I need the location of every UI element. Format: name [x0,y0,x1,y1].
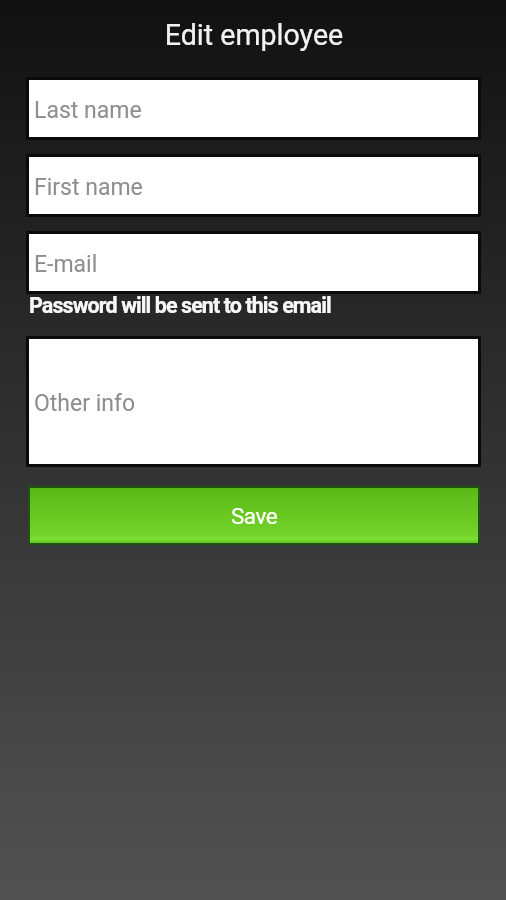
button[interactable]: Last name [29,80,478,137]
staticText: Password will be sent to this email [29,293,331,318]
button[interactable]: Save [30,488,478,543]
staticText: Save [231,503,278,529]
staticText: First name [34,174,143,201]
button[interactable]: Other info [29,339,478,464]
button[interactable]: E-mail [29,234,478,291]
staticText: E-mail [34,251,98,278]
button[interactable]: First name [29,157,478,214]
staticText: Edit employee [1,18,506,52]
staticText: Other info [34,390,136,417]
staticText: Last name [34,97,142,124]
